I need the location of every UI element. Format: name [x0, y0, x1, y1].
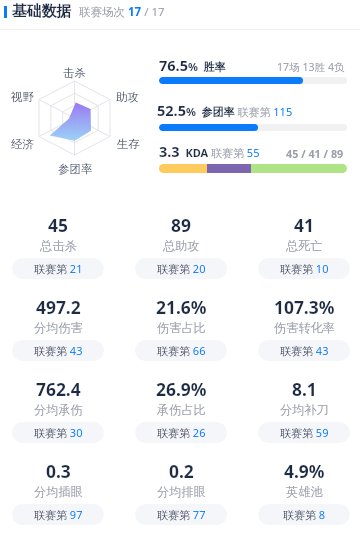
button[interactable]: 45	[0, 213, 119, 285]
staticText: 联赛第 43	[280, 343, 329, 358]
staticText: 总击杀	[40, 238, 77, 253]
staticText: 联赛第 20	[157, 261, 206, 276]
staticText: 联赛第 21	[34, 261, 83, 276]
staticText: 联赛第 97	[34, 507, 83, 522]
staticText: 联赛第 26	[157, 425, 206, 440]
staticText: 17场 13胜 4负	[277, 60, 345, 74]
staticText: 3.3 KDA 联赛第 55	[159, 141, 260, 161]
staticText: 26.9%	[156, 377, 207, 401]
staticText: 伤害转化率	[274, 320, 335, 335]
staticText: 联赛第 43	[34, 343, 83, 358]
button[interactable]: 基础数据	[4, 0, 360, 23]
staticText: 45 / 41 / 89	[286, 146, 344, 161]
staticText: 762.4	[36, 377, 81, 401]
staticText: 总死亡	[286, 238, 323, 253]
staticText: 497.2	[36, 295, 81, 319]
staticText: 联赛第 30	[34, 425, 83, 440]
staticText: 承伤占比	[157, 402, 206, 417]
staticText: 视野	[11, 90, 34, 104]
staticText: 0.3	[46, 459, 71, 483]
staticText: 英雄池	[286, 484, 323, 499]
staticText: 联赛第 66	[157, 343, 206, 358]
staticText: 0.2	[169, 459, 194, 483]
staticText: 联赛第 77	[157, 507, 206, 522]
staticText: 联赛第 59	[280, 425, 329, 440]
staticText: 76.5% 胜率	[159, 55, 226, 75]
staticText: 联赛场次 17 / 17	[79, 4, 165, 20]
button[interactable]: 41	[242, 213, 360, 285]
staticText: 89	[171, 213, 191, 237]
staticText: 8.1	[292, 377, 317, 401]
button[interactable]: 497.2	[0, 295, 119, 367]
staticText: 伤害占比	[157, 320, 206, 335]
staticText: 分均承伤	[34, 402, 83, 417]
button[interactable]: 8.1	[242, 377, 360, 449]
staticText: 经济	[11, 137, 34, 151]
button[interactable]: 26.9%	[119, 377, 242, 449]
staticText: 基础数据	[12, 2, 72, 21]
staticText: 52.5% 参团率 联赛第 115	[157, 100, 293, 120]
staticText: 参团率	[58, 162, 93, 176]
staticText: 联赛第 8	[283, 507, 326, 522]
staticText: 21.6%	[156, 295, 207, 319]
staticText: 击杀	[63, 66, 86, 80]
button[interactable]: 4.9%	[242, 459, 360, 531]
staticText: 分均伤害	[34, 320, 83, 335]
staticText: 生存	[117, 137, 140, 151]
button[interactable]: 107.3%	[242, 295, 360, 367]
button[interactable]: 762.4	[0, 377, 119, 449]
button[interactable]: 0.3	[0, 459, 119, 531]
button[interactable]: 21.6%	[119, 295, 242, 367]
staticText: 41	[294, 213, 314, 237]
staticText: 分均插眼	[34, 484, 83, 499]
button[interactable]: 0.2	[119, 459, 242, 531]
staticText: 45	[48, 213, 68, 237]
staticText: 107.3%	[274, 295, 335, 319]
staticText: 联赛第 10	[280, 261, 329, 276]
staticText: 分均补刀	[280, 402, 329, 417]
staticText: 总助攻	[163, 238, 200, 253]
button[interactable]: 89	[119, 213, 242, 285]
staticText: 4.9%	[284, 459, 325, 483]
staticText: 分均排眼	[157, 484, 206, 499]
staticText: 助攻	[116, 90, 139, 104]
